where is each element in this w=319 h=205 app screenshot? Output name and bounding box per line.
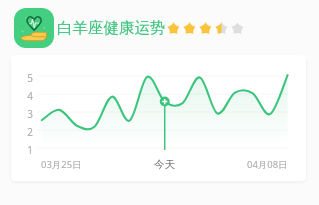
staticText: 2 xyxy=(24,125,36,181)
staticText: 1 xyxy=(24,143,36,181)
staticText: 03月25日 xyxy=(41,158,82,171)
staticText: 3 xyxy=(24,107,36,181)
button[interactable]: 1 xyxy=(11,55,306,181)
staticText: 白羊座健康运势 xyxy=(57,18,166,38)
staticText: 4 xyxy=(24,89,36,181)
staticText: 04月08日 xyxy=(247,158,288,171)
button[interactable]: 健康运势 xyxy=(14,8,54,48)
staticText: 今天 xyxy=(154,158,175,171)
staticText: 5 xyxy=(24,71,36,181)
